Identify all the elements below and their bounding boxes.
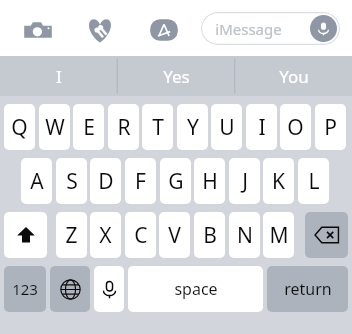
staticText: Yes <box>163 65 190 88</box>
button[interactable]: Camera <box>22 14 54 46</box>
button[interactable]: D <box>90 158 121 204</box>
button[interactable]: Dictate <box>310 15 337 42</box>
staticText: M <box>269 221 289 250</box>
staticText: T <box>152 113 164 142</box>
button[interactable]: Backspace <box>305 212 348 258</box>
button[interactable]: N <box>229 212 260 258</box>
button[interactable]: O <box>280 104 311 150</box>
button[interactable]: M <box>263 212 294 258</box>
button[interactable]: L <box>298 158 329 204</box>
button[interactable]: F <box>125 158 156 204</box>
button[interactable]: X <box>90 212 121 258</box>
button[interactable]: return <box>267 266 348 312</box>
staticText: P <box>324 113 337 142</box>
button[interactable]: H <box>194 158 225 204</box>
button[interactable]: Yes <box>118 56 235 96</box>
staticText: E <box>83 113 95 142</box>
staticText: N <box>237 221 253 250</box>
staticText: J <box>242 167 248 196</box>
button[interactable]: 123 <box>4 266 46 312</box>
staticText: V <box>168 221 181 250</box>
staticText: L <box>308 167 320 196</box>
staticText: B <box>203 221 217 250</box>
button[interactable]: App Store <box>148 14 180 46</box>
button[interactable]: R <box>108 104 139 150</box>
staticText: I <box>56 65 62 88</box>
button[interactable]: A <box>21 158 52 204</box>
staticText: I <box>258 113 266 142</box>
staticText: You <box>279 65 309 88</box>
button[interactable]: G <box>160 158 191 204</box>
button[interactable]: E <box>73 104 104 150</box>
staticText: space <box>174 278 218 300</box>
button[interactable]: iMessage <box>201 12 340 45</box>
staticText: K <box>272 167 285 196</box>
button[interactable]: K <box>263 158 294 204</box>
button[interactable]: B <box>194 212 225 258</box>
staticText: 123 <box>12 279 38 299</box>
staticText: Z <box>65 221 78 250</box>
button[interactable]: Dictation <box>94 266 124 312</box>
staticText: Q <box>11 113 28 142</box>
button[interactable]: V <box>159 212 190 258</box>
staticText: U <box>219 113 235 142</box>
staticText: R <box>117 113 131 142</box>
button[interactable]: Z <box>56 212 87 258</box>
button[interactable]: S <box>56 158 87 204</box>
staticText: return <box>284 278 332 300</box>
button[interactable]: C <box>125 212 156 258</box>
button[interactable]: Y <box>177 104 208 150</box>
button[interactable]: Switch keyboard <box>50 266 90 312</box>
button[interactable]: T <box>142 104 173 150</box>
staticText: A <box>30 167 44 196</box>
staticText: iMessage <box>215 19 282 39</box>
staticText: S <box>66 167 78 196</box>
staticText: G <box>168 167 184 196</box>
staticText: F <box>135 167 146 196</box>
button[interactable]: J <box>229 158 260 204</box>
staticText: O <box>287 113 304 142</box>
staticText: W <box>45 113 65 142</box>
button[interactable]: P <box>315 104 346 150</box>
staticText: D <box>98 167 114 196</box>
button[interactable]: Digital Touch <box>84 14 116 46</box>
staticText: H <box>202 167 218 196</box>
button[interactable]: Q <box>4 104 35 150</box>
staticText: X <box>99 221 112 250</box>
button[interactable]: W <box>39 104 70 150</box>
button[interactable]: I <box>246 104 277 150</box>
button[interactable]: I <box>0 56 118 96</box>
button[interactable]: U <box>211 104 242 150</box>
button[interactable]: You <box>235 56 352 96</box>
staticText: Y <box>187 113 199 142</box>
button[interactable]: Shift <box>4 212 47 258</box>
button[interactable]: space <box>128 266 263 312</box>
staticText: C <box>134 221 148 250</box>
